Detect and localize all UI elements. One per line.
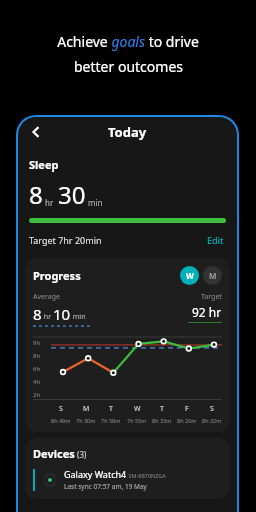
staticText: Galaxy Watch4 <box>64 468 127 480</box>
button[interactable]: Progress <box>25 258 230 432</box>
staticText: Edit <box>207 234 224 246</box>
staticText: 4h <box>33 378 41 386</box>
staticText: 30 <box>58 178 86 211</box>
staticText: T <box>160 404 164 414</box>
staticText: (3) <box>75 449 87 460</box>
staticText: Today <box>108 123 147 141</box>
staticText: 7h 30m <box>76 417 96 424</box>
staticText: S <box>210 404 214 414</box>
staticText: hr <box>45 197 54 208</box>
staticText: Achieve goals to drive <box>57 32 199 51</box>
staticText: F <box>185 404 189 414</box>
staticText: 10 <box>53 304 71 324</box>
staticText: better outcomes <box>74 57 183 76</box>
staticText: 9h <box>33 339 41 347</box>
staticText: 6h <box>33 365 41 373</box>
staticText: M <box>83 404 90 414</box>
button[interactable]: Back <box>22 118 50 146</box>
staticText: Target <box>201 292 222 302</box>
staticText: Last sync 07:57 am, 19 May <box>64 482 147 491</box>
staticText: Devices <box>33 446 75 461</box>
staticText: Sleep <box>29 157 59 172</box>
staticText: 7h 58m <box>101 417 121 424</box>
staticText: T <box>109 404 113 414</box>
staticText: 8h 32m <box>202 417 222 424</box>
staticText: Target 7hr 20min <box>29 234 102 246</box>
staticText: 8 <box>33 304 42 324</box>
staticText: 8 <box>29 178 43 211</box>
button[interactable]: M <box>203 266 222 285</box>
staticText: S <box>59 404 63 414</box>
staticText: 8h 20m <box>177 417 197 424</box>
staticText: 8h 49m <box>51 417 71 424</box>
button[interactable]: Edit <box>205 232 226 248</box>
staticText: 8h 33m <box>152 417 172 424</box>
staticText: Average <box>33 292 60 302</box>
staticText: W <box>186 270 194 281</box>
staticText: Progress <box>33 268 81 283</box>
staticText: W <box>134 404 141 414</box>
staticText: 7h 55m <box>127 417 147 424</box>
staticText: hr <box>42 312 53 322</box>
staticText: 2h <box>33 391 41 399</box>
staticText: M <box>209 270 217 281</box>
staticText: SM-R870NZGA <box>127 472 166 479</box>
staticText: min <box>88 197 103 208</box>
staticText: 92 hr <box>192 304 222 320</box>
button[interactable]: Devices <box>25 438 230 499</box>
staticText: 8h <box>33 352 41 360</box>
staticText: min <box>71 312 86 322</box>
button[interactable]: W <box>180 266 199 285</box>
